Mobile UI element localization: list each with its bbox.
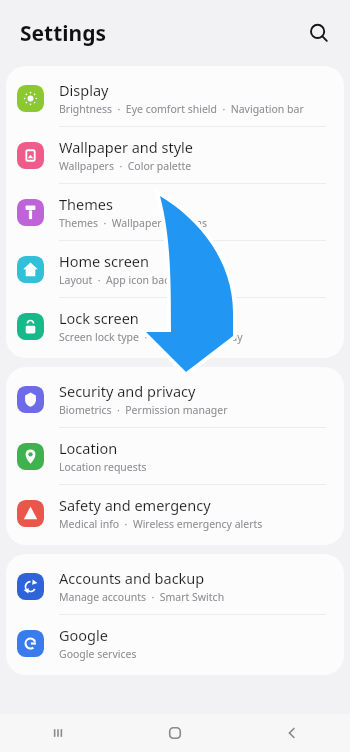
button[interactable]: Back [233,714,350,752]
staticText: Themes [59,194,113,214]
staticText: Medical info · Wireless emergency alerts [59,517,263,531]
staticText: Layout · App icon badges [59,273,189,287]
staticText: Accounts and backup [59,568,205,588]
staticText: Google [59,625,108,645]
button[interactable]: Location [6,428,344,484]
button[interactable]: Lock screen [6,298,344,354]
staticText: Location requests [59,460,147,474]
button[interactable]: Home screen [6,241,344,297]
staticText: Manage accounts · Smart Switch [59,590,225,604]
staticText: Security and privacy [59,381,196,401]
staticText: Display [59,80,109,100]
staticText: Home screen [59,251,149,271]
staticText: Wallpaper and style [59,137,193,157]
staticText: Brightness · Eye comfort shield · Naviga… [59,102,304,116]
button[interactable]: Home [116,714,233,752]
staticText: Google services [59,647,137,661]
staticText: Location [59,438,118,458]
button[interactable]: Wallpaper and style [6,127,344,183]
staticText: Wallpapers · Color palette [59,159,192,173]
button[interactable]: Safety and emergency [6,485,344,541]
staticText: Screen lock type · Always On Display [59,330,243,344]
staticText: Safety and emergency [59,495,211,515]
staticText: Themes · Wallpapers · Icons [59,216,207,230]
button[interactable]: Themes [6,184,344,240]
button[interactable]: Display [6,70,344,126]
button[interactable]: Search [302,16,336,50]
button[interactable]: Google [6,615,344,671]
button[interactable]: Security and privacy [6,371,344,427]
button[interactable]: Recents [0,714,116,752]
staticText: Biometrics · Permission manager [59,403,228,417]
staticText: Lock screen [59,308,139,328]
button[interactable]: Accounts and backup [6,558,344,614]
staticText: Settings [20,19,107,48]
